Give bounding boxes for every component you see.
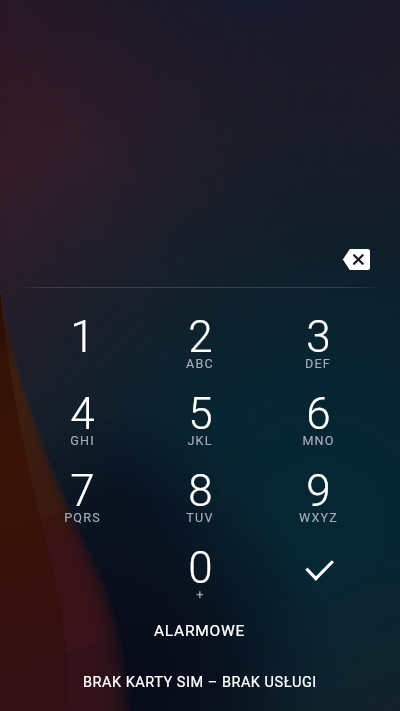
button[interactable]: ALARMOWE: [132, 614, 268, 648]
staticText: GHI: [70, 433, 95, 448]
button[interactable]: 8: [141, 452, 259, 530]
staticText: 7: [70, 465, 95, 517]
staticText: JKL: [187, 433, 213, 448]
button[interactable]: 4: [23, 375, 141, 453]
staticText: MNO: [302, 433, 335, 448]
staticText: PQRS: [64, 510, 101, 525]
staticText: 0: [188, 542, 213, 594]
button[interactable]: 5: [141, 375, 259, 453]
staticText: 6: [306, 388, 331, 440]
staticText: +: [196, 587, 205, 602]
button[interactable]: 1: [23, 298, 141, 376]
staticText: 8: [188, 465, 213, 517]
button[interactable]: 6: [259, 375, 377, 453]
button[interactable]: 7: [23, 452, 141, 530]
staticText: WXYZ: [299, 510, 338, 525]
staticText: 9: [306, 465, 331, 517]
button[interactable]: Confirm PIN: [259, 529, 377, 607]
staticText: BRAK KARTY SIM – BRAK USŁUGI: [83, 674, 317, 691]
staticText: 5: [188, 388, 213, 440]
button[interactable]: 0: [141, 529, 259, 607]
staticText: ABC: [186, 356, 214, 371]
staticText: 1: [70, 311, 95, 363]
button[interactable]: 2: [141, 298, 259, 376]
button[interactable]: 9: [259, 452, 377, 530]
staticText: 2: [188, 311, 213, 363]
staticText: 4: [70, 388, 95, 440]
staticText: 3: [306, 311, 331, 363]
button[interactable]: 3: [259, 298, 377, 376]
button[interactable]: Backspace: [332, 235, 380, 283]
staticText: TUV: [186, 510, 214, 525]
staticText: DEF: [305, 356, 331, 371]
staticText: ALARMOWE: [154, 622, 246, 640]
